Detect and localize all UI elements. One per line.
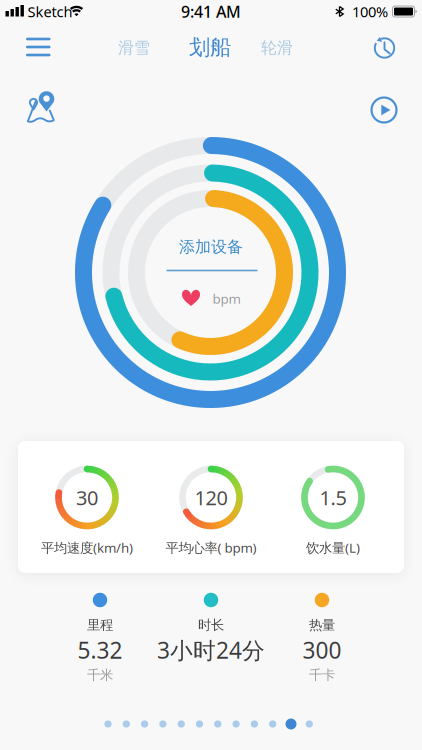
staticText: 轮滑: [261, 38, 293, 58]
staticText: 30: [76, 484, 98, 511]
staticText: 里程: [87, 617, 113, 633]
staticText: 120: [194, 484, 227, 511]
staticText: 100%: [352, 2, 388, 21]
staticText: 平均速度(km/h): [41, 539, 133, 556]
button[interactable]: [369, 95, 399, 125]
button[interactable]: [26, 37, 50, 57]
staticText: 300: [302, 635, 341, 665]
staticText: 5.32: [77, 635, 122, 665]
staticText: 9:41 AM: [181, 1, 241, 22]
staticText: 千卡: [309, 667, 335, 683]
button[interactable]: [371, 35, 397, 61]
staticText: 1.5: [319, 484, 346, 511]
staticText: 时长: [198, 617, 224, 633]
button[interactable]: [25, 94, 57, 124]
staticText: 平均心率( bpm): [165, 539, 256, 556]
staticText: 3小时24分: [157, 635, 265, 665]
staticText: 滑雪: [118, 38, 150, 58]
button[interactable]: 轮滑: [261, 38, 293, 58]
button[interactable]: 添加设备: [179, 237, 243, 257]
staticText: 饮水量(L): [306, 539, 360, 556]
staticText: 千米: [87, 667, 113, 683]
staticText: 热量: [309, 617, 335, 633]
staticText: bpm: [212, 290, 240, 307]
staticText: 划船: [189, 34, 231, 61]
staticText: Sketch: [27, 2, 72, 21]
button[interactable]: 划船: [189, 34, 231, 61]
staticText: 添加设备: [179, 237, 243, 257]
button[interactable]: 滑雪: [118, 38, 150, 58]
